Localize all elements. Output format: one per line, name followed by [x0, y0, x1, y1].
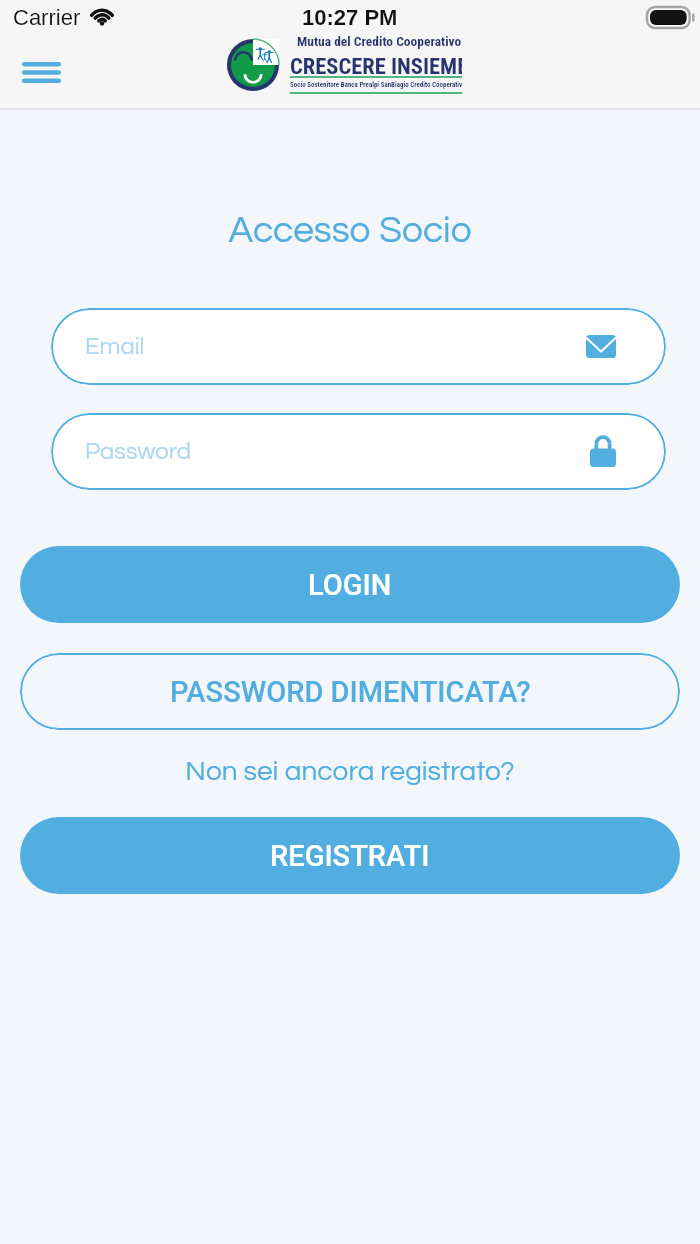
staticText: Non sei ancora registrato?	[0, 757, 700, 786]
staticText: Socio Sostenitore Banca Prealpi SanBiagi…	[290, 81, 462, 89]
staticText: Carrier	[13, 5, 81, 30]
staticText: Mutua del Credito Cooperativo	[297, 33, 462, 49]
staticText: PASSWORD DIMENTICATA?	[170, 675, 531, 709]
staticText: Password	[85, 439, 191, 464]
staticText: Accesso Socio	[0, 212, 700, 250]
button[interactable]: PASSWORD DIMENTICATA?	[20, 653, 680, 730]
button[interactable]: REGISTRATI	[20, 817, 680, 894]
staticText: LOGIN	[308, 568, 392, 602]
button[interactable]: LOGIN	[20, 546, 680, 623]
staticText: CRESCERE INSIEME	[290, 53, 462, 79]
staticText: 10:27 PM	[302, 5, 398, 30]
staticText: REGISTRATI	[270, 839, 430, 873]
button[interactable]: Password	[51, 413, 666, 490]
button[interactable]: Menu	[4, 42, 78, 104]
button[interactable]: Email	[51, 308, 666, 385]
staticText: Email	[85, 334, 145, 359]
